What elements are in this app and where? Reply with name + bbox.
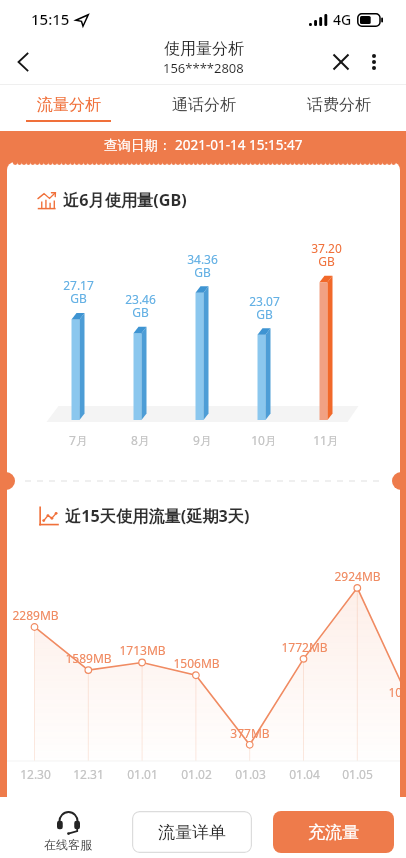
staticText: 23.46 GB <box>125 291 156 321</box>
staticText: 流量分析 <box>37 95 101 115</box>
staticText: 01.04 <box>289 766 320 782</box>
staticText: 1589MB <box>65 650 112 666</box>
staticText: 流量详单 <box>158 822 226 843</box>
staticText: 01.03 <box>235 766 266 782</box>
staticText: 7月 <box>69 432 88 448</box>
staticText: 8月 <box>131 432 150 448</box>
staticText: 话费分析 <box>307 95 371 115</box>
staticText: 01.01 <box>127 766 158 782</box>
staticText: 1039MB <box>388 684 400 700</box>
staticText: 11月 <box>313 432 339 448</box>
staticText: 2289MB <box>12 607 59 623</box>
staticText: 在线客服 <box>44 837 92 852</box>
staticText: 1713MB <box>119 642 166 658</box>
staticText: 12.30 <box>20 766 51 782</box>
button[interactable]: Back <box>0 39 46 85</box>
button[interactable]: 在线客服 <box>40 812 96 852</box>
staticText: 充流量 <box>308 822 359 843</box>
staticText: 156****2808 <box>163 59 244 77</box>
staticText: 37.20 GB <box>311 240 342 270</box>
staticText: 23.07 GB <box>249 293 280 323</box>
staticText: 12.31 <box>73 766 104 782</box>
button[interactable]: 话费分析 <box>271 85 406 131</box>
staticText: 9月 <box>193 432 212 448</box>
staticText: 近15天使用流量(延期3天) <box>65 505 250 527</box>
staticText: 377MB <box>230 725 270 741</box>
staticText: 10月 <box>251 432 277 448</box>
button[interactable]: 通话分析 <box>136 85 271 131</box>
staticText: 15:15 <box>31 9 70 29</box>
staticText: 通话分析 <box>172 95 236 115</box>
staticText: 查询日期： 2021-01-14 15:15:47 <box>104 136 303 154</box>
button[interactable]: 充流量 <box>273 811 394 853</box>
staticText: 1772MB <box>281 639 328 655</box>
staticText: 2924MB <box>334 568 381 584</box>
staticText: 近6月使用量(GB) <box>63 189 187 211</box>
staticText: 1506MB <box>173 655 220 671</box>
button[interactable]: More options <box>354 42 394 82</box>
staticText: 01.05 <box>342 766 373 782</box>
button[interactable]: Close <box>318 39 363 84</box>
staticText: 27.17 GB <box>63 277 94 307</box>
button[interactable]: 流量分析 <box>0 85 136 131</box>
staticText: 01.02 <box>181 766 212 782</box>
staticText: 使用量分析 <box>164 39 244 59</box>
staticText: 4G <box>333 10 352 29</box>
button[interactable]: 流量详单 <box>132 811 252 853</box>
staticText: 34.36 GB <box>187 251 218 281</box>
